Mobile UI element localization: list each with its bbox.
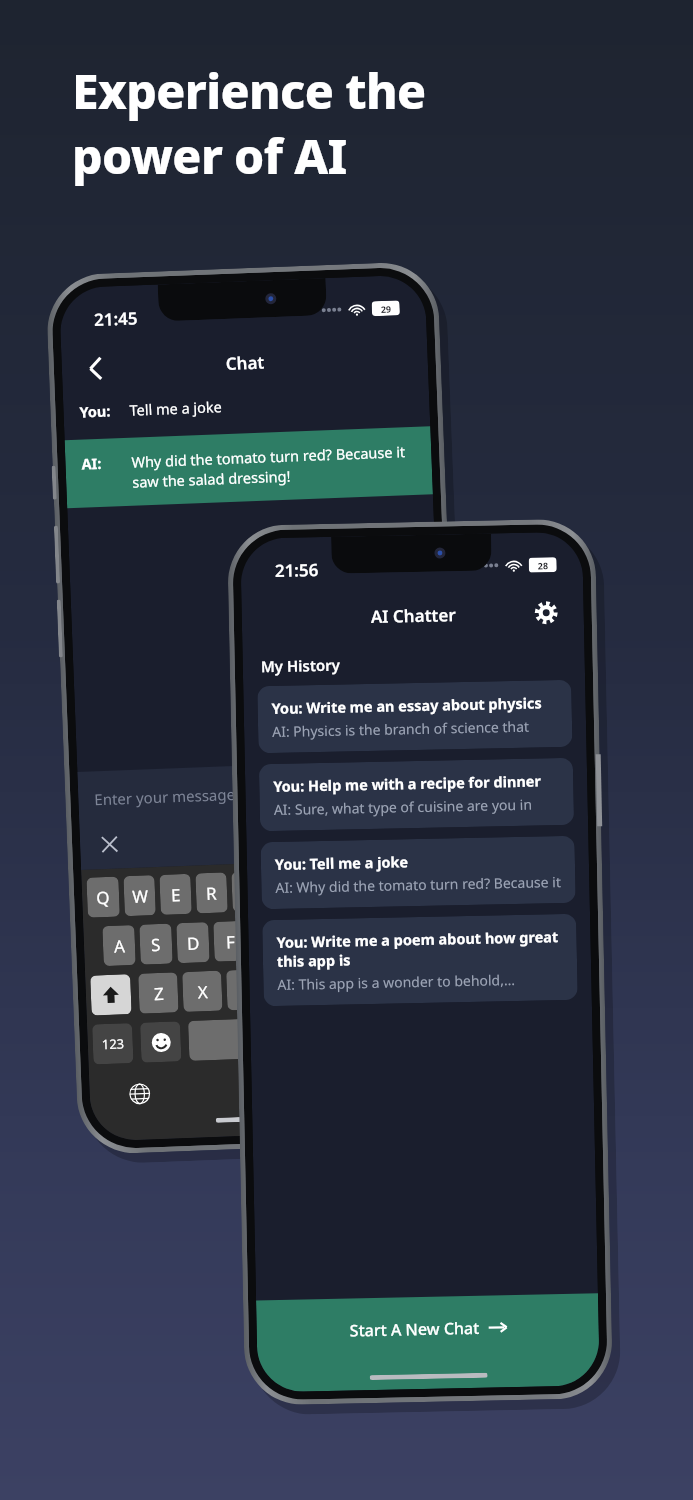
staticText: Chat [225, 350, 265, 375]
staticText: U [313, 877, 326, 901]
staticText: You: Write me an essay about physics [271, 692, 543, 718]
button[interactable]: Z [138, 972, 179, 1014]
staticText: Q [96, 886, 111, 909]
staticText: D [186, 931, 200, 955]
staticText: AI: Why did the tomato turn red? Because… [275, 872, 561, 897]
button[interactable]: Emoji [140, 1021, 181, 1063]
staticText: S [151, 933, 161, 956]
staticText: AI: This app is a wonder to behold,… [277, 970, 515, 994]
button[interactable]: R [195, 872, 228, 913]
staticText: 123 [101, 1034, 125, 1053]
staticText: Enter your message [94, 784, 236, 809]
staticText: F [225, 930, 235, 953]
staticText: AI Chatter [370, 603, 456, 628]
button[interactable]: W [123, 875, 156, 916]
staticText: O [384, 875, 399, 898]
staticText: I [352, 876, 359, 899]
staticText: You: Tell me a joke [275, 851, 409, 874]
staticText: Why did the tomato turn red? Because it … [131, 441, 416, 492]
staticText: K [372, 924, 384, 948]
staticText: Y [279, 879, 289, 902]
button[interactable]: J [324, 916, 358, 958]
button[interactable]: Space [188, 1011, 449, 1061]
staticText: 21:56 [274, 558, 319, 582]
staticText: P [421, 873, 433, 897]
button[interactable]: S [139, 923, 173, 965]
staticText: Experience the [72, 58, 426, 123]
staticText: Tell me a joke [129, 396, 223, 420]
button[interactable]: O [375, 865, 408, 907]
staticText: B [328, 975, 341, 998]
staticText: You: Write me a poem about how great thi… [276, 926, 563, 971]
staticText: You: [79, 400, 130, 422]
button[interactable]: K [361, 915, 395, 956]
button[interactable]: E [159, 874, 192, 915]
button[interactable]: Settings [527, 594, 564, 631]
button[interactable]: You: Write me an essay about physics [257, 680, 572, 753]
button[interactable]: P [411, 864, 444, 905]
staticText: M [414, 972, 431, 995]
button[interactable]: Clear [96, 830, 123, 857]
staticText: Start A New Chat [349, 1317, 480, 1341]
staticText: 21:45 [93, 306, 138, 331]
button[interactable]: M [402, 962, 442, 1004]
staticText: 28 [538, 559, 549, 571]
button[interactable]: C [226, 969, 267, 1010]
staticText: T [243, 880, 253, 904]
button[interactable]: Change keyboard [122, 1076, 157, 1111]
button[interactable]: You: Write me a poem about how great thi… [262, 914, 578, 1006]
button[interactable]: Q [86, 876, 120, 918]
staticText: C [240, 978, 252, 1002]
button[interactable]: You: Tell me a joke [260, 836, 576, 909]
button[interactable]: Y [267, 870, 300, 911]
button[interactable]: You: Help me with a recipe for dinner [259, 758, 574, 831]
staticText: X [197, 980, 208, 1003]
staticText: R [206, 882, 217, 905]
staticText: N [371, 973, 385, 997]
button[interactable]: 123 [92, 1023, 133, 1065]
button[interactable]: Back [75, 348, 114, 388]
button[interactable]: D [176, 922, 210, 963]
button[interactable]: A [102, 925, 136, 966]
staticText: E [171, 883, 182, 906]
button[interactable]: B [314, 965, 354, 1007]
button[interactable]: F [213, 921, 247, 962]
staticText: My History [261, 655, 341, 676]
staticText: A [114, 934, 125, 958]
staticText: power of AI [72, 123, 347, 188]
staticText: L [410, 923, 420, 946]
staticText: AI: Physics is the branch of science tha… [272, 716, 558, 741]
button[interactable]: G [250, 919, 284, 960]
staticText: AI: [81, 452, 132, 474]
button[interactable]: I [339, 867, 372, 908]
staticText: You: Help me with a recipe for dinner [273, 770, 541, 796]
button[interactable]: X [182, 971, 223, 1012]
button[interactable]: L [398, 913, 431, 955]
button[interactable]: U [303, 868, 336, 909]
staticText: G [260, 929, 274, 952]
staticText: W [132, 884, 149, 908]
staticText: V [284, 977, 296, 1000]
button[interactable]: Shift [90, 974, 132, 1016]
button[interactable]: T [231, 871, 264, 912]
button[interactable]: H [287, 918, 321, 959]
staticText: H [297, 927, 311, 951]
button[interactable]: Start A New Chat [256, 1293, 600, 1392]
staticText: AI: Sure, what type of cuisine are you i… [274, 794, 560, 819]
button[interactable]: N [358, 964, 398, 1005]
staticText: 29 [380, 303, 392, 315]
button[interactable]: V [270, 967, 310, 1009]
staticText: Z [153, 982, 164, 1005]
staticText: J [338, 926, 344, 949]
